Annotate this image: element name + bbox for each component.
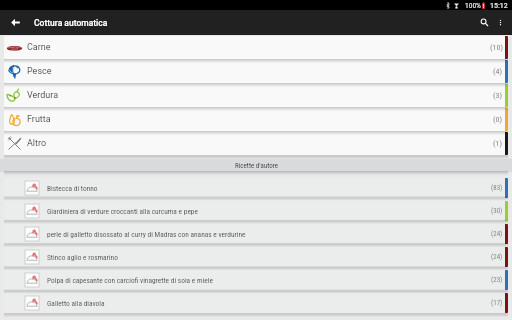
button[interactable]: Back xyxy=(0,10,30,35)
staticText: (17) xyxy=(491,299,503,307)
staticText: 100% xyxy=(465,1,481,10)
staticText: Galletto alla diavola xyxy=(47,299,105,308)
staticText: (4) xyxy=(493,67,503,76)
staticText: (3) xyxy=(493,91,503,100)
staticText: Polpa di capesante con carciofi vinagret… xyxy=(47,276,213,285)
button[interactable]: Search xyxy=(477,10,492,35)
staticText: 15:12 xyxy=(490,1,508,10)
staticText: (10) xyxy=(490,43,503,52)
staticText: (0) xyxy=(493,115,503,124)
staticText: Cottura automatica xyxy=(34,18,108,28)
button[interactable]: Polpa di capesante con carciofi vinagret… xyxy=(4,270,508,290)
button[interactable]: Altro xyxy=(4,132,508,155)
staticText: perle di galletto disossato al curry di … xyxy=(47,230,246,239)
staticText: (23) xyxy=(491,276,503,284)
staticText: (1) xyxy=(493,139,503,148)
staticText: (30) xyxy=(491,207,503,215)
staticText: Ricette d'autore xyxy=(235,162,278,170)
staticText: Verdura xyxy=(27,90,59,101)
staticText: Stinco aglio e rosmarino xyxy=(47,253,118,262)
button[interactable]: perle di galletto disossato al curry di … xyxy=(4,224,508,244)
button[interactable]: Stinco aglio e rosmarino xyxy=(4,247,508,267)
staticText: Bistecca di tonno xyxy=(47,184,98,193)
staticText: (24) xyxy=(491,253,503,261)
button[interactable]: Pesce xyxy=(4,60,508,83)
button[interactable]: Verdura xyxy=(4,84,508,107)
button[interactable]: Galletto alla diavola xyxy=(4,293,508,313)
button[interactable]: Bistecca di tonno xyxy=(4,178,508,198)
button[interactable]: Frutta xyxy=(4,108,508,131)
staticText: (24) xyxy=(491,230,503,238)
staticText: Altro xyxy=(27,138,47,149)
staticText: Giardiniera di verdure croccanti alla cu… xyxy=(47,207,198,216)
button[interactable]: More options xyxy=(492,10,509,35)
staticText: Carne xyxy=(27,42,51,53)
staticText: (83) xyxy=(491,184,503,192)
button[interactable]: Carne xyxy=(4,36,508,59)
staticText: Pesce xyxy=(27,66,52,77)
staticText: Frutta xyxy=(27,114,51,125)
button[interactable]: Giardiniera di verdure croccanti alla cu… xyxy=(4,201,508,221)
